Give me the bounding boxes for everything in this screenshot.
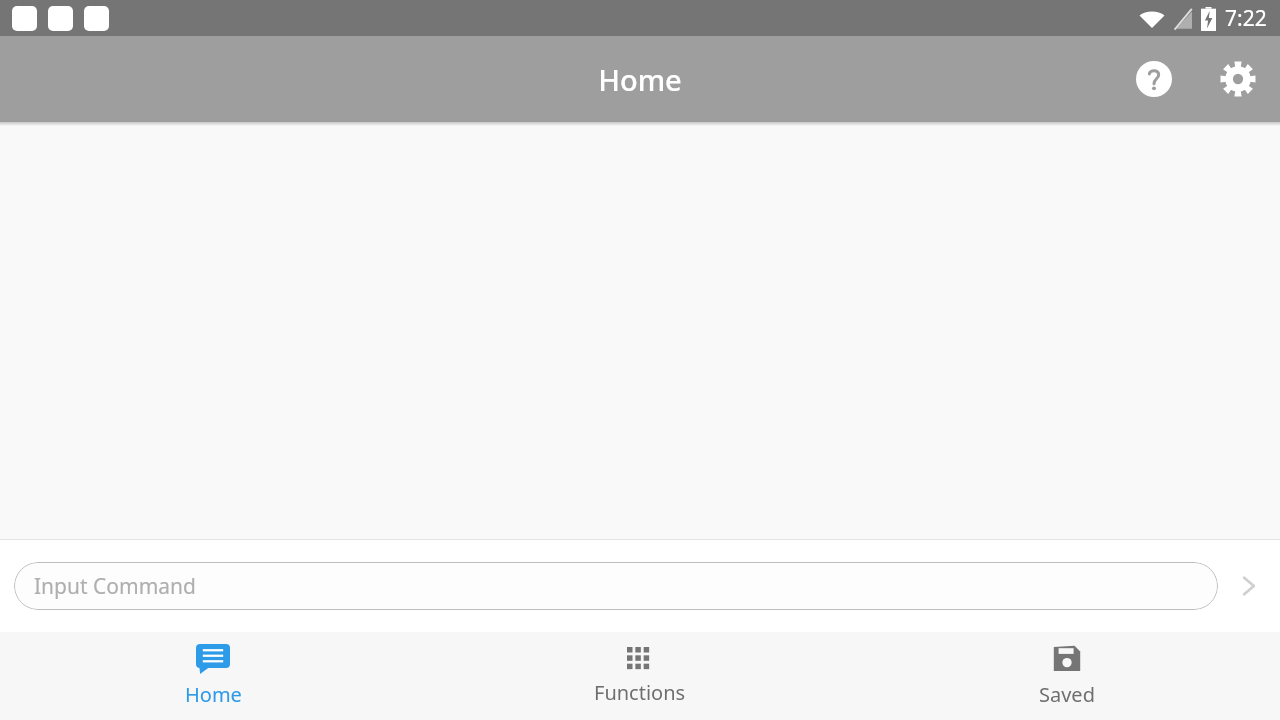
button[interactable]: Input Command [14, 562, 1218, 610]
button[interactable]: Functions [426, 632, 853, 720]
staticText: Saved [1039, 681, 1095, 708]
button[interactable]: Saved [853, 632, 1280, 720]
staticText: Home [185, 681, 242, 708]
button[interactable]: Help [1130, 55, 1178, 103]
staticText: Input Command [34, 572, 196, 601]
button[interactable]: Settings [1214, 55, 1262, 103]
staticText: 7:22 [1225, 4, 1267, 33]
staticText: Functions [594, 679, 686, 706]
button[interactable]: Send [1218, 555, 1280, 617]
staticText: Home [598, 60, 682, 99]
button[interactable]: Home [0, 632, 426, 720]
